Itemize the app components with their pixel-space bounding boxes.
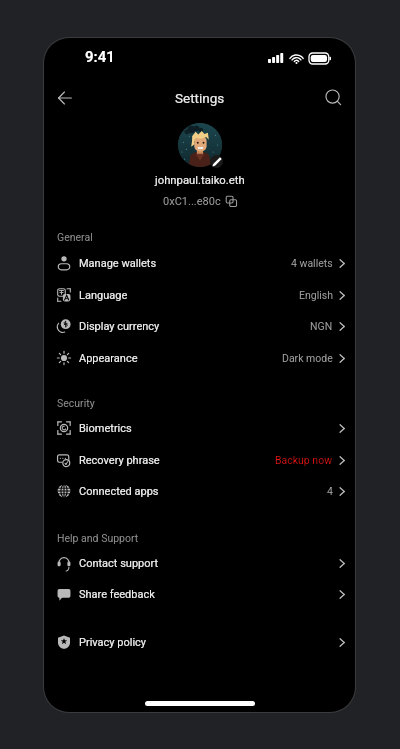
- staticText: 9:41: [85, 48, 115, 66]
- staticText: Language: [79, 289, 128, 302]
- staticText: johnpaul.taiko.eth: [155, 174, 245, 187]
- staticText: Share feedback: [79, 588, 155, 601]
- staticText: Contact support: [79, 557, 159, 570]
- button[interactable]: Biometrics: [44, 414, 355, 442]
- button[interactable]: Back: [47, 80, 83, 116]
- staticText: General: [57, 231, 93, 243]
- button[interactable]: Manage wallets: [44, 249, 355, 277]
- staticText: Dark mode: [282, 352, 333, 364]
- button[interactable]: Search: [317, 81, 351, 115]
- staticText: NGN: [310, 320, 333, 332]
- button[interactable]: Appearance: [44, 344, 355, 372]
- staticText: Recovery phrase: [79, 454, 160, 467]
- button[interactable]: Display currency: [44, 312, 355, 340]
- staticText: Security: [57, 397, 95, 409]
- button[interactable]: Contact support: [44, 549, 355, 577]
- staticText: 4: [327, 485, 333, 497]
- staticText: Manage wallets: [79, 257, 157, 270]
- staticText: Settings: [175, 90, 225, 106]
- staticText: Privacy policy: [79, 636, 147, 649]
- staticText: Appearance: [79, 352, 138, 365]
- staticText: 4 wallets: [291, 257, 333, 269]
- staticText: Connected apps: [79, 485, 159, 498]
- button[interactable]: Share feedback: [44, 580, 355, 608]
- staticText: Biometrics: [79, 422, 132, 435]
- button[interactable]: 0xC1...e80c: [161, 195, 239, 208]
- staticText: English: [299, 289, 333, 301]
- button[interactable]: Privacy policy: [44, 628, 355, 656]
- staticText: 0xC1...e80c: [163, 195, 221, 208]
- staticText: Help and Support: [57, 532, 139, 544]
- staticText: Backup now: [275, 454, 333, 466]
- button[interactable]: Edit profile picture: [210, 155, 223, 168]
- button[interactable]: Recovery phrase: [44, 446, 355, 474]
- button[interactable]: Connected apps: [44, 477, 355, 505]
- staticText: Display currency: [79, 320, 160, 333]
- button[interactable]: Language: [44, 281, 355, 309]
